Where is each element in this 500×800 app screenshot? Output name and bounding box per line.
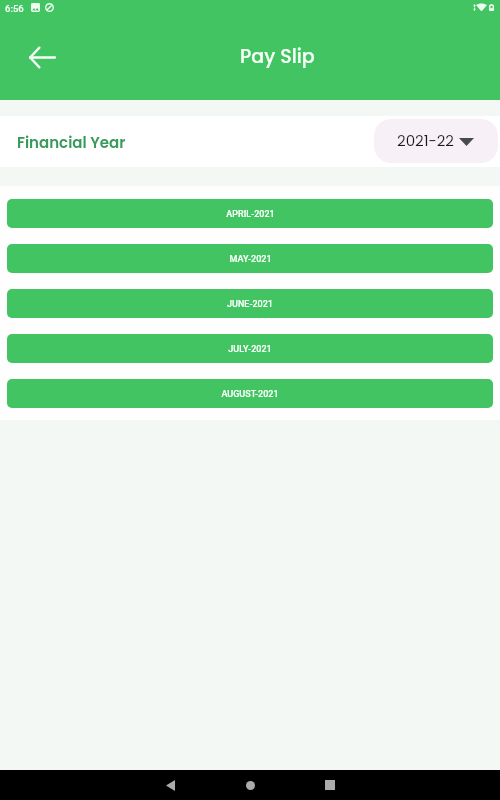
button[interactable]: APRIL-2021 xyxy=(7,199,493,228)
staticText: JUNE-2021 xyxy=(227,299,273,310)
button[interactable]: Recent apps xyxy=(315,770,345,800)
staticText: Financial Year xyxy=(17,132,126,153)
button[interactable]: Home xyxy=(235,770,265,800)
button[interactable]: JUNE-2021 xyxy=(7,289,493,318)
button[interactable]: 2021-22 xyxy=(374,119,498,163)
button[interactable]: JULY-2021 xyxy=(7,334,493,363)
button[interactable]: AUGUST-2021 xyxy=(7,379,493,408)
staticText: Pay Slip xyxy=(240,43,315,70)
staticText: MAY-2021 xyxy=(229,254,272,265)
button[interactable]: MAY-2021 xyxy=(7,244,493,273)
staticText: 2021-22 xyxy=(397,130,454,151)
button[interactable]: Back xyxy=(22,37,62,77)
staticText: 6:56 xyxy=(5,3,24,14)
staticText: JULY-2021 xyxy=(228,344,272,355)
staticText: APRIL-2021 xyxy=(226,209,275,220)
button[interactable]: Back xyxy=(155,770,185,800)
staticText: AUGUST-2021 xyxy=(221,389,279,400)
